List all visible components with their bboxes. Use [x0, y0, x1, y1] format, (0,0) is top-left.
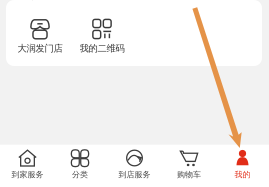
button[interactable]: 到家服务 [1, 149, 54, 179]
staticText: 我的二维码 [79, 42, 124, 54]
button[interactable]: 购物车 [162, 149, 215, 179]
button[interactable]: 我的二维码 [71, 19, 133, 54]
button[interactable]: 我的 [216, 149, 269, 179]
button[interactable]: 大润发门店 [9, 19, 71, 54]
staticText: 大润发门店 [17, 42, 62, 54]
staticText: 分类 [72, 170, 88, 179]
staticText: 到家服务 [11, 170, 43, 179]
staticText: 购物车 [177, 170, 201, 179]
button[interactable]: 分类 [53, 149, 106, 179]
staticText: 我的 [234, 170, 250, 179]
button[interactable]: 到店服务 [108, 149, 161, 179]
staticText: 到店服务 [118, 170, 150, 179]
